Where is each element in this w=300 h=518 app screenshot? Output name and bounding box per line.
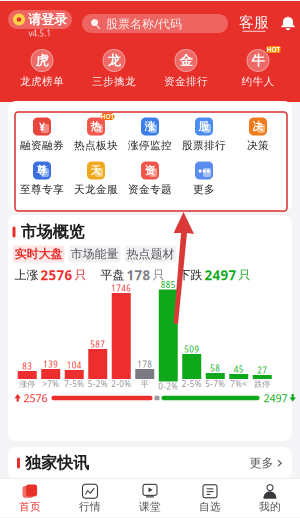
staticText: 热点板块: [74, 139, 118, 152]
staticText: 首页: [19, 500, 41, 513]
staticText: 178: [137, 359, 152, 370]
button[interactable]: 我的: [240, 481, 300, 515]
staticText: 5-7%: [205, 379, 225, 389]
staticText: 104: [67, 360, 82, 371]
staticText: 融资融券: [20, 139, 64, 152]
button[interactable]: 涨: [123, 116, 177, 152]
staticText: 请登录: [28, 11, 67, 28]
staticText: 股票排行: [182, 139, 226, 152]
button[interactable]: 热: [69, 116, 123, 152]
button[interactable]: 金: [150, 48, 222, 88]
button[interactable]: 股票名称/代码: [82, 14, 228, 33]
button[interactable]: 虎: [6, 48, 78, 88]
staticText: 至尊专享: [20, 183, 64, 196]
staticText: 跌停: [254, 379, 270, 389]
button[interactable]: •••: [177, 160, 231, 196]
staticText: 2497: [204, 266, 236, 284]
staticText: 587: [90, 339, 105, 350]
button[interactable]: 龙: [78, 48, 150, 88]
staticText: >7%: [42, 379, 59, 389]
staticText: 509: [184, 344, 199, 355]
staticText: 平盘: [100, 268, 124, 282]
staticText: 2-0%: [111, 379, 131, 389]
staticText: 资金排行: [164, 75, 208, 88]
staticText: 只: [74, 268, 86, 282]
button[interactable]: 实时大盘: [12, 245, 64, 262]
button[interactable]: 客服: [240, 14, 268, 32]
staticText: 58: [210, 363, 220, 374]
staticText: 龙虎榜单: [20, 75, 64, 88]
button[interactable]: 天: [69, 160, 123, 196]
staticText: 市场能量: [70, 247, 118, 261]
staticText: 约牛人: [241, 75, 274, 88]
staticText: 7-5%: [64, 379, 84, 389]
staticText: 83: [22, 361, 32, 372]
button[interactable]: 首页: [0, 481, 60, 515]
staticText: 涨停监控: [128, 139, 172, 152]
staticText: 股: [198, 120, 209, 133]
button[interactable]: Notifications: [280, 16, 296, 31]
staticText: 2576: [40, 266, 72, 284]
button[interactable]: 股: [177, 116, 231, 152]
staticText: 天: [90, 164, 101, 177]
staticText: 只: [238, 268, 250, 282]
staticText: 金: [179, 52, 192, 69]
staticText: 5-2%: [88, 379, 108, 389]
button[interactable]: 请登录: [8, 9, 72, 37]
staticText: ¥: [39, 119, 45, 134]
staticText: 2-5%: [182, 379, 202, 389]
staticText: HOT: [266, 45, 280, 54]
staticText: 139: [43, 359, 58, 370]
staticText: 2497: [263, 391, 287, 405]
staticText: 虎: [35, 52, 48, 69]
staticText: 天龙金服: [74, 183, 118, 196]
staticText: 涨: [144, 120, 155, 133]
staticText: 课堂: [139, 500, 161, 513]
button[interactable]: 行情: [60, 481, 120, 515]
staticText: 股票名称/代码: [106, 15, 182, 31]
staticText: 我的: [259, 500, 281, 513]
staticText: 只: [152, 268, 164, 282]
button[interactable]: 牛: [222, 48, 294, 88]
staticText: 独家快讯: [25, 453, 89, 473]
staticText: •••: [198, 163, 210, 178]
staticText: 热点题材: [126, 247, 174, 261]
button[interactable]: 决: [231, 116, 285, 152]
staticText: 885: [161, 280, 176, 290]
staticText: 1746: [111, 283, 131, 294]
staticText: v4.5.1: [28, 28, 51, 39]
staticText: 资: [144, 164, 155, 177]
staticText: 热: [90, 120, 101, 133]
staticText: 2576: [23, 391, 47, 405]
staticText: 178: [126, 266, 150, 284]
staticText: 平: [141, 379, 149, 389]
staticText: 下跌: [178, 268, 202, 282]
button[interactable]: 热点题材: [124, 245, 176, 262]
staticText: 决策: [247, 139, 269, 152]
staticText: HOT: [100, 112, 114, 121]
staticText: 0-2%: [158, 381, 178, 392]
button[interactable]: ¥: [15, 116, 69, 152]
staticText: 龙: [107, 52, 120, 69]
staticText: 更多: [193, 183, 215, 196]
staticText: 45: [234, 364, 244, 375]
button[interactable]: 课堂: [120, 481, 180, 515]
staticText: 27: [257, 365, 267, 376]
button[interactable]: 更多: [250, 456, 283, 470]
staticText: 客服: [239, 13, 269, 31]
staticText: 资金专题: [128, 183, 172, 196]
button[interactable]: 市场能量: [68, 245, 120, 262]
staticText: 决: [252, 120, 263, 133]
button[interactable]: 自选: [180, 481, 240, 515]
staticText: 实时大盘: [14, 247, 62, 261]
staticText: 市场概览: [20, 222, 84, 242]
staticText: 牛: [251, 52, 264, 69]
staticText: 涨停: [19, 379, 35, 389]
staticText: 三步擒龙: [92, 75, 136, 88]
staticText: 尊: [36, 164, 47, 177]
staticText: 行情: [79, 500, 101, 513]
button[interactable]: 尊: [15, 160, 69, 196]
button[interactable]: 资: [123, 160, 177, 196]
staticText: 更多: [250, 456, 274, 470]
staticText: 7%<: [230, 379, 247, 389]
